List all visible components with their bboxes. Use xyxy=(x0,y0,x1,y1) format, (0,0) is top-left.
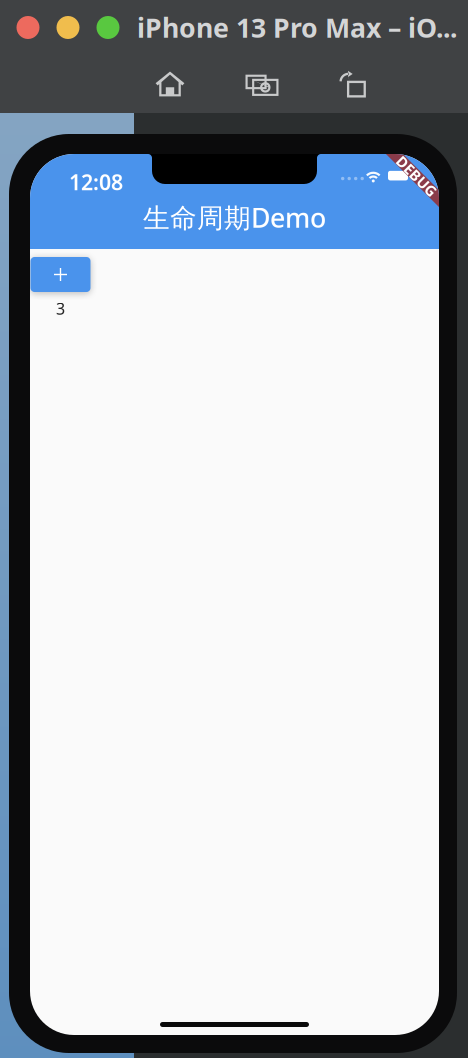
button[interactable]: Rotate xyxy=(326,64,382,104)
button[interactable]: Close window xyxy=(16,16,39,39)
staticText: iPhone 13 Pro Max – iO... xyxy=(137,10,457,45)
button[interactable]: Home xyxy=(142,64,198,104)
button[interactable]: Zoom window xyxy=(96,16,119,39)
button[interactable] xyxy=(30,257,90,292)
staticText: DEBUG xyxy=(391,167,442,186)
button[interactable]: Screenshot xyxy=(234,64,290,104)
button[interactable]: Minimise window xyxy=(56,16,79,39)
staticText: 3 xyxy=(56,298,65,319)
staticText: 12:08 xyxy=(69,168,123,196)
staticText: 生命周期Demo xyxy=(143,200,326,235)
